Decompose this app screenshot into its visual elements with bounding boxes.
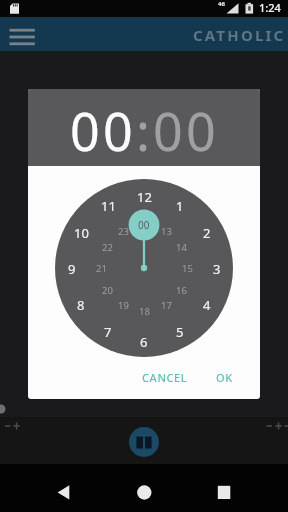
staticText: 14 bbox=[176, 241, 187, 254]
staticText: 13 bbox=[161, 225, 172, 238]
button[interactable]: 9 bbox=[57, 260, 87, 276]
staticText: 1:24 bbox=[259, 0, 281, 15]
button[interactable]: 3 bbox=[202, 260, 232, 276]
staticText: 00 bbox=[138, 218, 150, 232]
button[interactable]: 5 bbox=[165, 323, 195, 339]
button[interactable]: 16 bbox=[169, 283, 193, 297]
button[interactable]: 17 bbox=[154, 298, 178, 312]
button[interactable]: 22 bbox=[95, 240, 119, 254]
button[interactable]: CANCEL bbox=[130, 363, 200, 391]
button[interactable]: 11 bbox=[93, 197, 123, 213]
staticText: 21 bbox=[96, 262, 107, 275]
button[interactable]: 2 bbox=[192, 224, 222, 240]
button[interactable]: 6 bbox=[129, 333, 159, 349]
button[interactable]: 18 bbox=[132, 304, 156, 318]
button[interactable]: 23 bbox=[111, 224, 135, 238]
staticText: 4 bbox=[203, 296, 211, 312]
staticText: 10 bbox=[74, 224, 89, 240]
staticText: 22 bbox=[102, 241, 113, 254]
button[interactable] bbox=[128, 476, 160, 504]
button[interactable]: 4 bbox=[192, 296, 222, 312]
staticText: 00:00 bbox=[70, 95, 219, 166]
button[interactable] bbox=[6, 41, 38, 51]
staticText: 23 bbox=[118, 225, 129, 238]
button[interactable]: 20 bbox=[95, 283, 119, 297]
button[interactable]: 19 bbox=[111, 298, 135, 312]
staticText: 46 bbox=[218, 0, 225, 8]
button[interactable]: 14 bbox=[169, 240, 193, 254]
button[interactable]: 8 bbox=[66, 296, 96, 312]
button[interactable]: 10 bbox=[66, 224, 96, 240]
staticText: 16 bbox=[176, 284, 187, 297]
staticText: 8 bbox=[77, 296, 85, 312]
staticText: 17 bbox=[161, 299, 172, 312]
staticText: 15 bbox=[182, 262, 193, 275]
staticText: 9 bbox=[68, 260, 76, 276]
staticText: 19 bbox=[118, 299, 129, 312]
staticText: 6 bbox=[140, 333, 148, 349]
button[interactable]: 15 bbox=[175, 261, 199, 275]
staticText: 1 bbox=[176, 197, 184, 213]
staticText: 11 bbox=[101, 197, 116, 213]
staticText: 7 bbox=[104, 323, 112, 339]
staticText: 3 bbox=[213, 260, 221, 276]
staticText: 18 bbox=[139, 305, 150, 318]
button[interactable]: 12 bbox=[129, 188, 159, 204]
button[interactable]: 1 bbox=[165, 197, 195, 213]
button[interactable] bbox=[48, 476, 80, 504]
button[interactable]: 7 bbox=[93, 323, 123, 339]
staticText: CATHOLIC C bbox=[193, 25, 288, 45]
staticText: OK bbox=[216, 370, 233, 385]
staticText: 12 bbox=[137, 188, 152, 204]
button[interactable]: OK bbox=[202, 363, 246, 391]
button[interactable] bbox=[129, 427, 159, 457]
staticText: 5 bbox=[176, 323, 184, 339]
button[interactable]: 21 bbox=[89, 261, 113, 275]
staticText: CANCEL bbox=[142, 370, 188, 385]
button[interactable]: 13 bbox=[154, 224, 178, 238]
button[interactable] bbox=[208, 476, 240, 504]
staticText: 20 bbox=[102, 284, 113, 297]
staticText: 2 bbox=[203, 224, 211, 240]
